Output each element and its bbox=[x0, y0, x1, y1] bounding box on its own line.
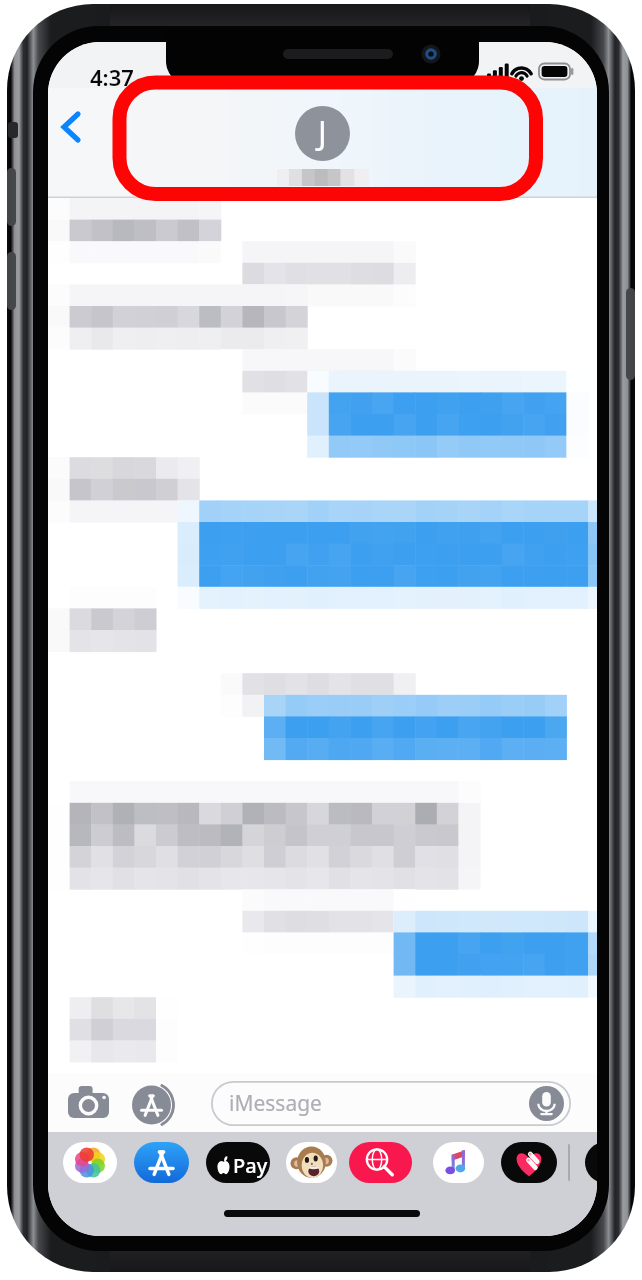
staticText: J bbox=[318, 111, 327, 155]
staticText: Pay bbox=[233, 1152, 268, 1179]
button[interactable]: Camera bbox=[62, 1081, 114, 1123]
button[interactable]: Apps bbox=[132, 1082, 178, 1128]
staticText: iMessage bbox=[229, 1089, 322, 1118]
button[interactable]: Record audio bbox=[528, 1085, 565, 1122]
button[interactable]: iMessage bbox=[211, 1081, 571, 1126]
staticText: 4:37 bbox=[90, 62, 134, 92]
button[interactable]: Back bbox=[48, 104, 94, 150]
button[interactable]: J bbox=[48, 106, 597, 186]
